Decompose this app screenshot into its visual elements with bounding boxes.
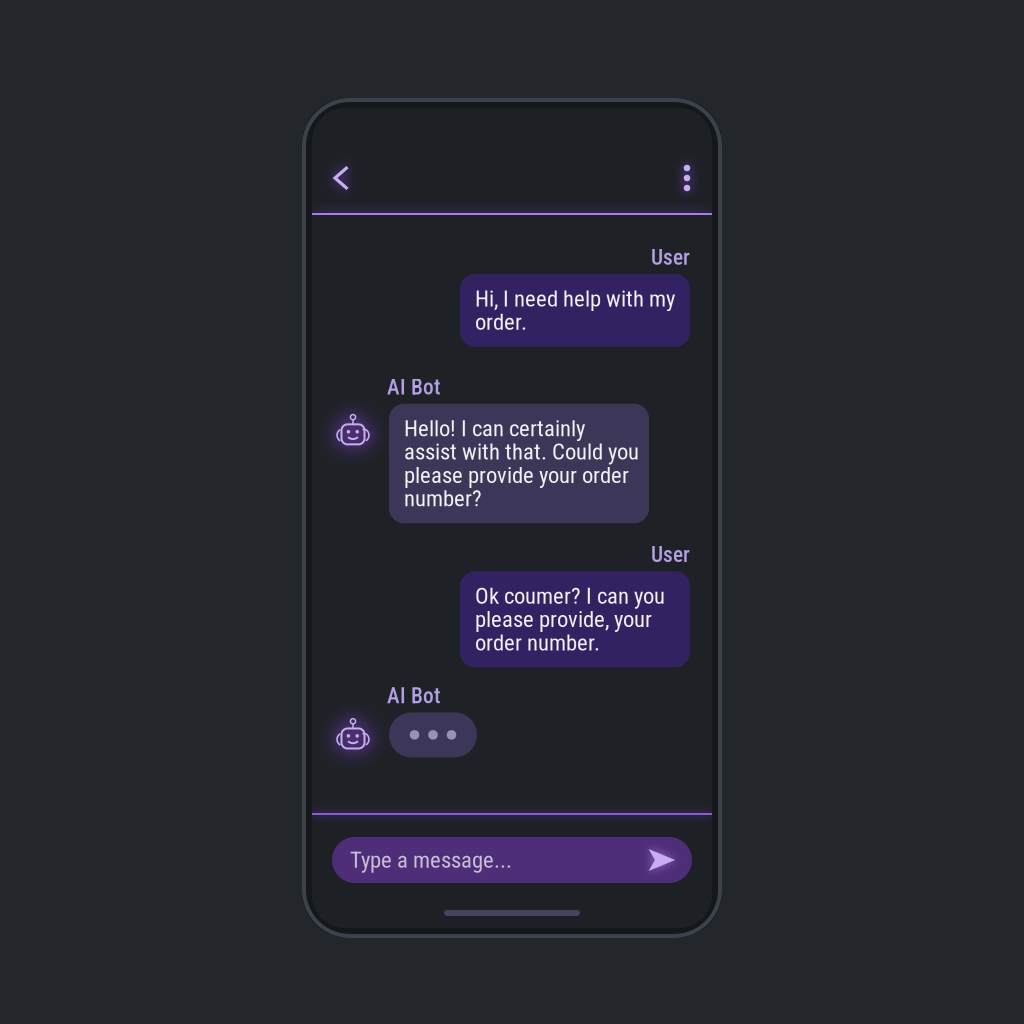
button[interactable]: Back xyxy=(319,156,363,200)
staticText: AI Bot xyxy=(387,375,440,400)
staticText: Hi, I need help with my order. xyxy=(475,287,675,334)
button[interactable]: More options xyxy=(665,156,709,200)
staticText: AI Bot xyxy=(387,683,440,708)
staticText: Hello! I can certainly assist with that.… xyxy=(404,417,639,510)
staticText: Ok coumer? I can you please provide, you… xyxy=(475,584,665,654)
staticText: User xyxy=(651,245,690,270)
staticText: User xyxy=(651,542,690,567)
button[interactable]: Type a message... xyxy=(332,837,692,883)
staticText: Type a message... xyxy=(350,848,512,872)
